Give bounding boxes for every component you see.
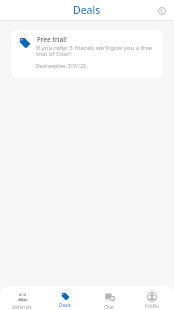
staticText: ? [160,7,163,14]
button[interactable]: Help [155,4,168,17]
button[interactable]: Deals [45,286,85,308]
staticText: Deals [59,302,71,308]
staticText: Profile [145,303,159,309]
staticText: Chat [104,304,114,310]
staticText: Referrals [12,304,32,310]
button[interactable]: Chat [89,286,129,310]
staticText: Deal expires 3/31/22 [36,62,86,69]
button[interactable]: Free trial! [11,30,163,78]
staticText: If you refer 5 friends we'll give you a … [36,43,156,58]
button[interactable]: Referrals [2,286,42,310]
staticText: Free trial! [37,35,67,44]
button[interactable]: Profile [132,286,172,309]
staticText: Deals [73,3,101,17]
